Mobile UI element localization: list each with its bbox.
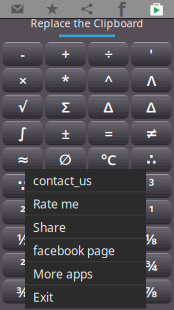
- staticText: ¹: [63, 255, 68, 275]
- button[interactable]: Δ: [88, 95, 129, 119]
- staticText: Σ: [62, 97, 70, 117]
- staticText: ×: [19, 71, 27, 90]
- button[interactable]: ∴: [131, 148, 171, 172]
- button[interactable]: ⅛: [131, 227, 171, 251]
- staticText: ²: [63, 176, 68, 196]
- staticText: °C: [101, 150, 116, 169]
- staticText: ⅜: [16, 282, 29, 301]
- button[interactable]: Share: [25, 216, 146, 239]
- button[interactable]: ⅓: [45, 227, 86, 251]
- button[interactable]: +: [45, 42, 86, 66]
- button[interactable]: ⅞: [131, 280, 171, 304]
- staticText: Rate me: [33, 196, 79, 212]
- staticText: ≈: [17, 151, 29, 168]
- staticText: Δ: [103, 97, 113, 117]
- staticText: ∵: [18, 178, 28, 194]
- staticText: ∴: [146, 151, 156, 168]
- button[interactable]: ⅝: [45, 280, 86, 304]
- staticText: ⅔: [101, 255, 115, 275]
- staticText: Replace the Clipboard: [30, 16, 143, 30]
- button[interactable]: °C: [88, 148, 129, 172]
- button[interactable]: ¼: [88, 227, 129, 251]
- button[interactable]: ¹: [45, 253, 86, 277]
- staticText: Δ: [146, 97, 156, 117]
- staticText: -: [20, 44, 25, 64]
- staticText: Λ: [147, 71, 156, 90]
- staticText: +: [62, 44, 70, 64]
- button[interactable]: ≈: [2, 148, 43, 172]
- button[interactable]: More apps: [25, 262, 146, 285]
- staticText: ¼: [102, 229, 114, 249]
- staticText: √: [18, 98, 28, 115]
- button[interactable]: *: [45, 68, 86, 92]
- button[interactable]: ': [131, 42, 171, 66]
- staticText: =: [104, 123, 112, 143]
- staticText: ': [149, 44, 153, 64]
- button[interactable]: Email: [0, 5, 35, 13]
- staticText: f: [118, 0, 126, 22]
- staticText: ¹: [149, 203, 154, 222]
- staticText: Exit: [33, 289, 53, 305]
- button[interactable]: Σ: [45, 95, 86, 119]
- button[interactable]: Replace the Clipboard: [0, 19, 174, 41]
- staticText: contact_us: [33, 173, 92, 189]
- button[interactable]: ÷: [88, 42, 129, 66]
- button[interactable]: ^: [88, 68, 129, 92]
- button[interactable]: More apps: [139, 2, 174, 16]
- button[interactable]: Rate me: [25, 192, 146, 216]
- button[interactable]: -: [2, 42, 43, 66]
- button[interactable]: Λ: [131, 68, 171, 92]
- staticText: ±: [62, 123, 70, 143]
- staticText: ¾: [145, 255, 157, 275]
- staticText: ½: [17, 229, 29, 249]
- staticText: facebook page: [33, 243, 115, 258]
- button[interactable]: ×: [2, 68, 43, 92]
- staticText: Share: [33, 219, 66, 235]
- staticText: ⅛: [145, 229, 158, 249]
- button[interactable]: √: [2, 95, 43, 119]
- button[interactable]: Rate: [35, 3, 70, 15]
- staticText: ²: [20, 255, 25, 275]
- button[interactable]: ³: [88, 174, 129, 198]
- button[interactable]: ³: [131, 174, 171, 198]
- button[interactable]: ¹: [131, 200, 171, 224]
- staticText: ⅞: [145, 282, 158, 301]
- button[interactable]: ⅔: [88, 253, 129, 277]
- button[interactable]: ²: [2, 253, 43, 277]
- button[interactable]: ±: [45, 121, 86, 145]
- button[interactable]: ½: [2, 227, 43, 251]
- button[interactable]: ∵: [2, 174, 43, 198]
- staticText: ÷: [104, 44, 112, 64]
- button[interactable]: ²: [2, 200, 43, 224]
- button[interactable]: ≠: [131, 121, 171, 145]
- button[interactable]: ⅜: [2, 280, 43, 304]
- staticText: ∅: [59, 151, 72, 168]
- staticText: ≠: [145, 125, 157, 141]
- staticText: ³: [63, 203, 68, 222]
- button[interactable]: Facebook: [104, 2, 139, 16]
- staticText: *: [62, 71, 70, 90]
- button[interactable]: contact_us: [25, 169, 146, 192]
- button[interactable]: Δ: [131, 95, 171, 119]
- staticText: ∫: [18, 125, 27, 141]
- button[interactable]: facebook page: [25, 239, 146, 262]
- button[interactable]: Share: [70, 3, 104, 15]
- button[interactable]: ∫: [2, 121, 43, 145]
- staticText: ⅓: [59, 229, 72, 249]
- button[interactable]: ²: [45, 174, 86, 198]
- staticText: ^: [104, 71, 112, 90]
- button[interactable]: =: [88, 121, 129, 145]
- button[interactable]: ¾: [131, 253, 171, 277]
- button[interactable]: ³: [45, 200, 86, 224]
- button[interactable]: ∅: [45, 148, 86, 172]
- staticText: ²: [20, 203, 25, 222]
- staticText: ³: [149, 176, 154, 196]
- staticText: More apps: [33, 266, 93, 282]
- button[interactable]: Exit: [25, 285, 146, 309]
